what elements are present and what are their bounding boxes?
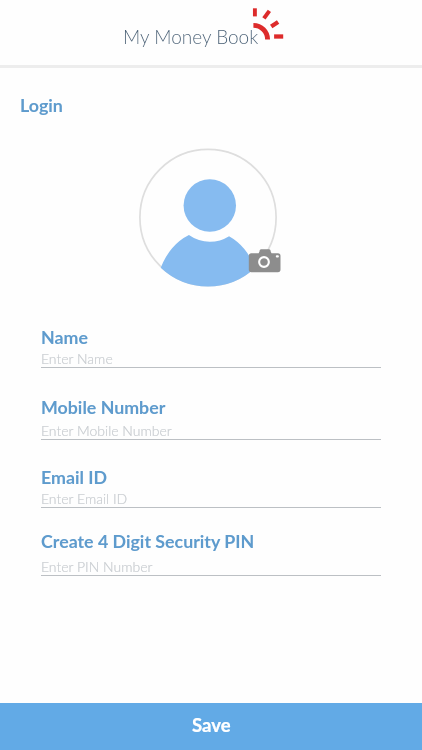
staticText: Save xyxy=(192,714,231,736)
button[interactable]: Name xyxy=(41,320,383,373)
staticText: Mobile Number xyxy=(41,396,166,417)
button[interactable]: Create 4 Digit Security PIN xyxy=(41,524,383,581)
staticText: Name xyxy=(41,326,88,347)
staticText: Email ID xyxy=(41,466,108,487)
staticText: Enter PIN Number xyxy=(41,558,153,575)
button[interactable]: Change profile photo xyxy=(136,145,284,293)
staticText: Create 4 Digit Security PIN xyxy=(41,530,255,551)
staticText: Enter Email ID xyxy=(41,490,128,507)
staticText: Enter Mobile Number xyxy=(41,422,172,439)
staticText: My Money Book xyxy=(123,25,259,48)
staticText: Enter Name xyxy=(41,350,113,367)
button[interactable]: Mobile Number xyxy=(41,390,383,445)
button[interactable]: Login xyxy=(20,94,63,115)
button[interactable]: Save xyxy=(0,703,422,750)
button[interactable]: Email ID xyxy=(41,460,383,513)
